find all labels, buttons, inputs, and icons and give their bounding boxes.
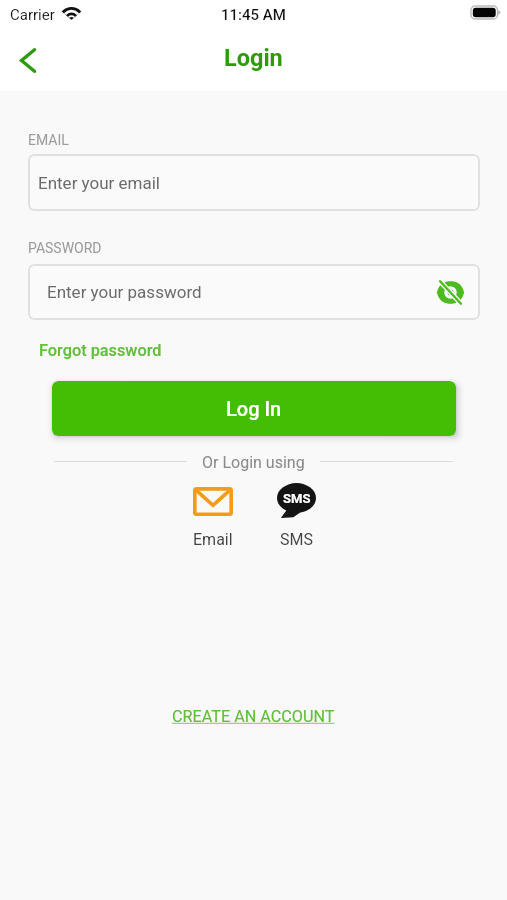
- staticText: Forgot password: [39, 341, 162, 360]
- staticText: SMS: [280, 530, 313, 549]
- staticText: CREATE AN ACCOUNT: [172, 707, 335, 726]
- staticText: Enter your password: [47, 282, 202, 302]
- staticText: Or Login using: [202, 453, 305, 472]
- staticText: Carrier: [10, 6, 55, 24]
- button[interactable]: SMS: [255, 483, 337, 549]
- button[interactable]: Log In: [52, 381, 456, 436]
- staticText: Enter your email: [38, 173, 161, 193]
- staticText: 11:45 AM: [221, 6, 286, 24]
- button[interactable]: Back: [3, 36, 51, 84]
- staticText: SMS: [283, 491, 311, 506]
- staticText: Email: [193, 530, 233, 549]
- staticText: Login: [224, 44, 283, 72]
- staticText: EMAIL: [28, 132, 69, 148]
- button[interactable]: Enter your email: [28, 154, 480, 211]
- button[interactable]: Show password: [435, 277, 465, 307]
- button[interactable]: CREATE AN ACCOUNT: [167, 702, 340, 731]
- staticText: Log In: [226, 397, 282, 420]
- button[interactable]: Enter your password: [28, 264, 480, 320]
- button[interactable]: Email: [172, 483, 254, 549]
- staticText: PASSWORD: [28, 240, 102, 256]
- button[interactable]: Forgot password: [39, 341, 162, 360]
